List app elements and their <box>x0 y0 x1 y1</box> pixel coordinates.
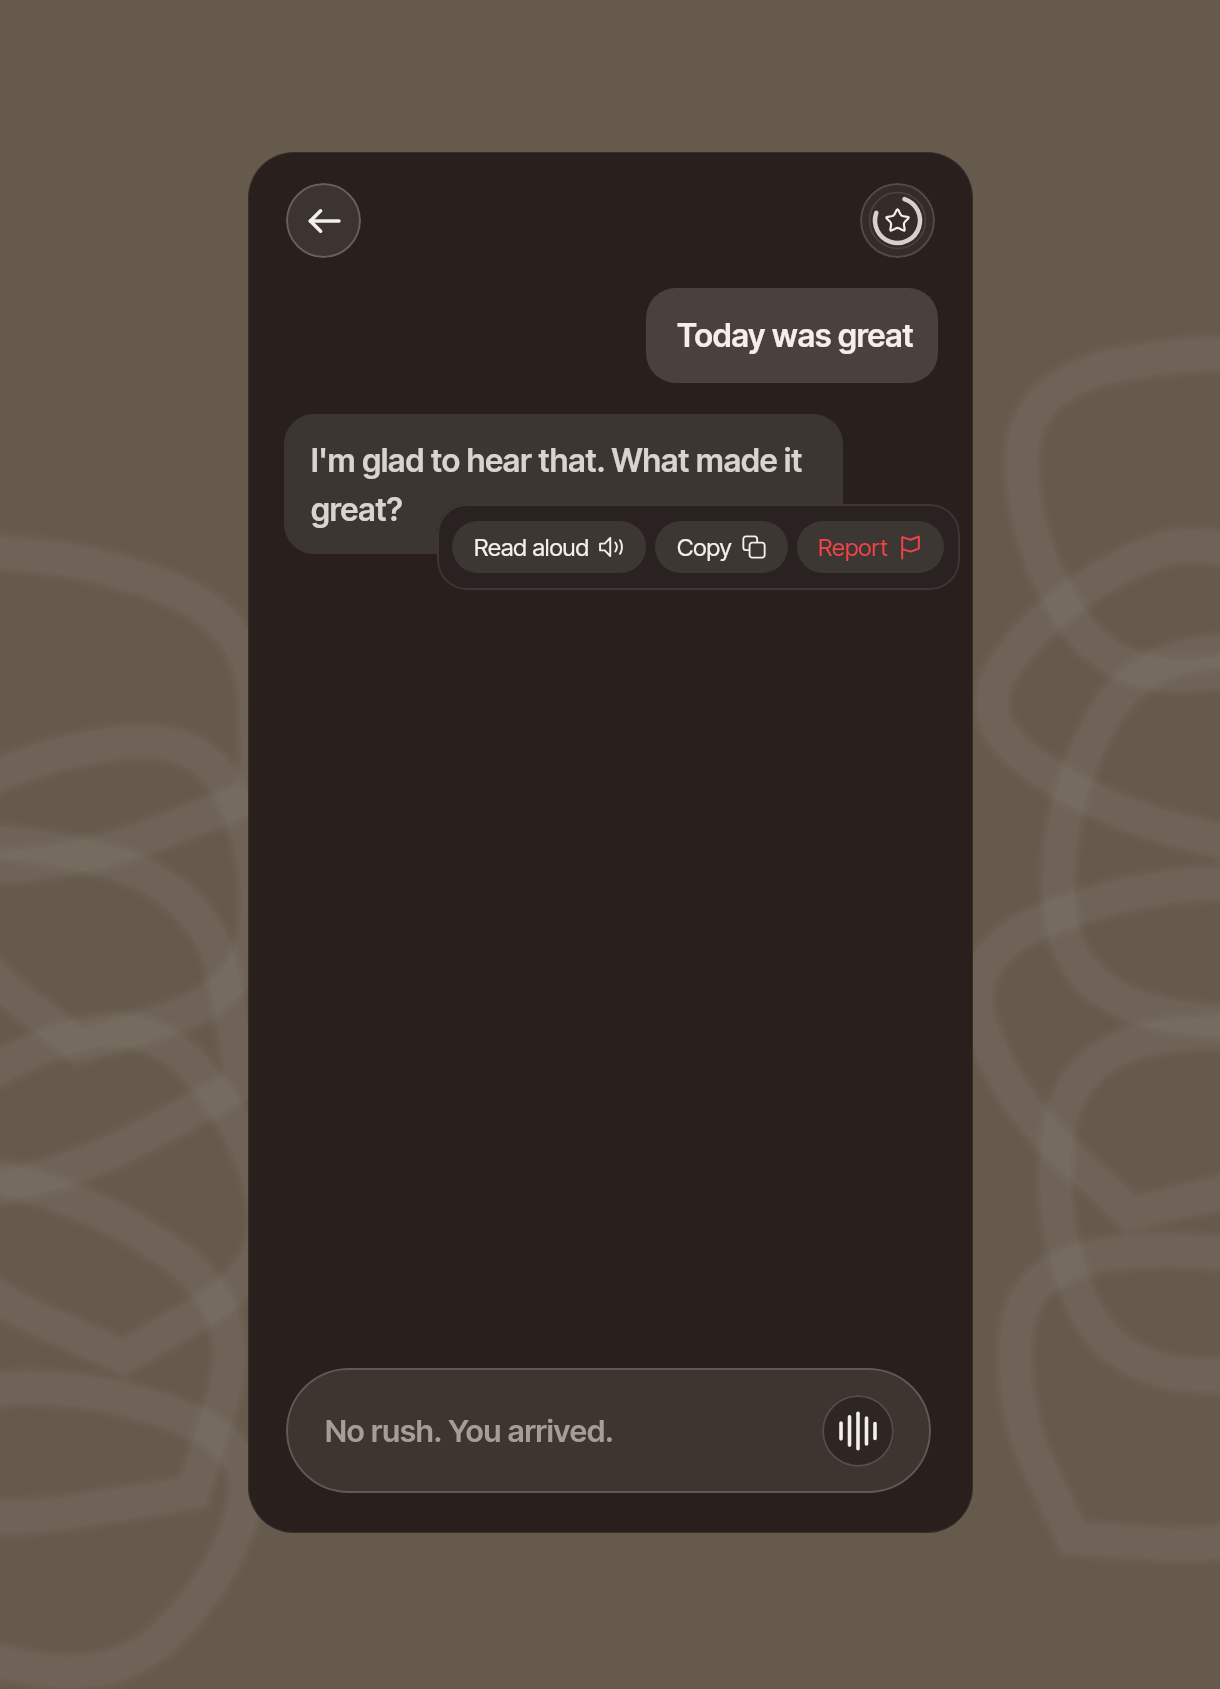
button[interactable]: Report <box>797 521 944 573</box>
staticText: Read aloud <box>474 533 589 562</box>
button[interactable]: Streak <box>860 183 935 258</box>
staticText: Today was great <box>677 316 914 355</box>
button[interactable]: Read aloud <box>452 521 646 573</box>
staticText: Report <box>818 533 888 562</box>
button[interactable]: Today was great <box>646 288 938 383</box>
button[interactable]: Copy <box>655 521 788 573</box>
button[interactable]: I'm glad to hear that. What made it grea… <box>284 414 843 554</box>
button[interactable]: Voice input <box>822 1395 894 1467</box>
button[interactable]: No rush. You arrived. <box>286 1368 931 1493</box>
staticText: Copy <box>677 533 732 562</box>
button[interactable]: Back <box>286 183 361 258</box>
staticText: No rush. You arrived. <box>325 1412 614 1450</box>
staticText: I'm glad to hear that. What made it grea… <box>311 441 823 529</box>
